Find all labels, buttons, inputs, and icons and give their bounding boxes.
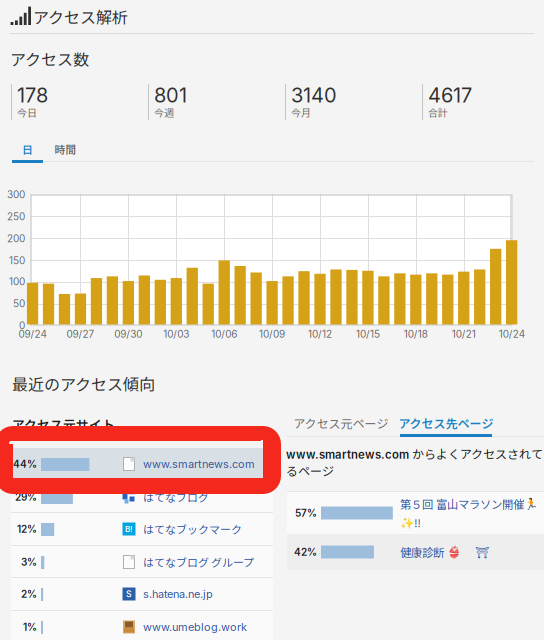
staticText: B! (125, 524, 133, 534)
staticText: 日 (22, 141, 33, 157)
button[interactable]: 57% (287, 492, 544, 534)
staticText: 44% (13, 458, 37, 470)
staticText: ✨‼ (400, 514, 421, 530)
button[interactable]: アクセス元ページ (296, 412, 386, 434)
staticText: 時間 (54, 141, 76, 157)
staticText: 合計 (428, 105, 448, 119)
staticText: 今週 (154, 105, 174, 119)
button[interactable]: 44% (11, 448, 273, 480)
staticText: 10/12 (308, 328, 332, 340)
staticText: 10/24 (499, 328, 525, 340)
staticText: 0 (19, 319, 25, 332)
staticText: www.smartnews.com からよくアクセスされているページ (286, 445, 544, 479)
staticText: 10/18 (404, 328, 428, 340)
button[interactable]: 29% (11, 481, 273, 513)
staticText: 42% (294, 546, 317, 558)
button[interactable]: 42% (287, 534, 544, 570)
staticText: 300 (7, 188, 25, 201)
staticText: 今月 (291, 105, 311, 119)
staticText: 3140 (291, 83, 337, 107)
staticText: 801 (154, 83, 187, 107)
staticText: 1% (23, 621, 37, 633)
staticText: 健康診断 👙 ⛩ (400, 544, 489, 560)
staticText: 100 (9, 275, 25, 288)
staticText: 200 (7, 232, 25, 245)
staticText: 50 (13, 297, 25, 310)
staticText: 57% (295, 507, 317, 519)
button[interactable]: アクセス先ページ (400, 412, 492, 434)
staticText: 150 (9, 254, 25, 267)
button[interactable]: 時間 (43, 140, 88, 158)
button[interactable]: 2% (11, 578, 273, 610)
staticText: 最近のアクセス傾向 (12, 372, 155, 395)
staticText: はてなブログ グループ (143, 554, 254, 570)
staticText: 第５回 富山マラソン開催🏃 (400, 496, 538, 512)
staticText: 09/30 (114, 328, 142, 340)
staticText: アクセス解析 (33, 5, 128, 28)
staticText: 09/27 (66, 328, 94, 340)
staticText: 10/03 (163, 328, 189, 340)
staticText: 4617 (428, 83, 472, 107)
staticText: 09/24 (18, 328, 46, 340)
staticText: 178 (17, 83, 48, 107)
staticText: アクセス元ページ (293, 414, 388, 432)
staticText: 250 (7, 210, 25, 223)
staticText: 29% (15, 491, 37, 503)
button[interactable]: 日 (12, 140, 43, 158)
staticText: S (126, 589, 132, 599)
staticText: s.hatena.ne.jp (143, 587, 213, 601)
button[interactable]: 3% (11, 546, 273, 578)
staticText: 10/15 (356, 328, 380, 340)
staticText: はてなブックマーク (143, 521, 242, 537)
staticText: アクセス元サイト (12, 415, 115, 433)
staticText: 2% (21, 588, 37, 600)
staticText: 10/06 (211, 328, 237, 340)
staticText: 10/09 (259, 328, 285, 340)
staticText: アクセス数 (10, 47, 89, 70)
staticText: アクセス先ページ (398, 414, 493, 432)
staticText: www.smartnews.com (143, 457, 255, 471)
staticText: 3% (21, 556, 37, 568)
staticText: www.umeblog.work (143, 620, 247, 634)
staticText: 12% (17, 523, 37, 535)
button[interactable]: 1% (11, 611, 273, 640)
staticText: はてなブログ (143, 489, 209, 505)
staticText: 今日 (17, 105, 37, 119)
button[interactable]: 12% (11, 513, 273, 545)
staticText: 10/21 (452, 328, 476, 340)
